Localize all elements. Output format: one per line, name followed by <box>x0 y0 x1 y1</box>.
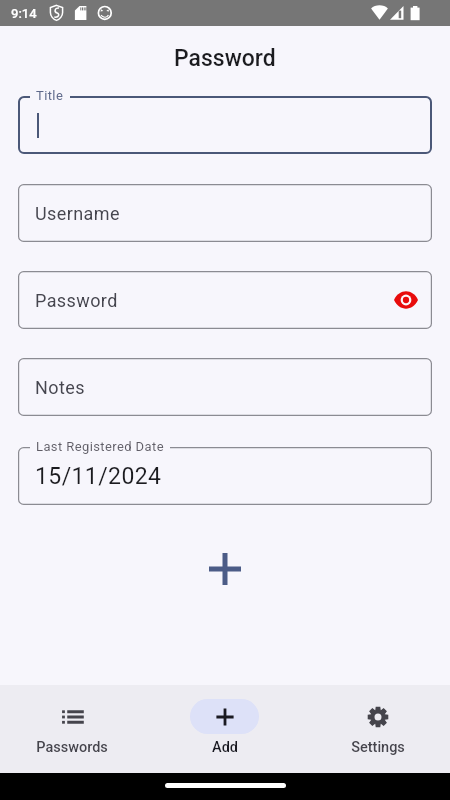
button[interactable]: Settings <box>301 685 450 756</box>
staticText: 15/11/2024 <box>35 463 162 490</box>
staticText: Password <box>35 290 118 311</box>
staticText: Passwords <box>36 739 108 756</box>
staticText: Username <box>35 203 120 224</box>
staticText: Settings <box>351 739 405 756</box>
staticText: Notes <box>35 377 85 398</box>
button[interactable]: Password <box>18 271 432 329</box>
button[interactable]: Last Registered Date <box>18 447 432 505</box>
button[interactable]: Show password <box>387 281 425 319</box>
staticText: 9:14 <box>11 6 37 21</box>
button[interactable]: Username <box>18 184 432 242</box>
staticText: Last Registered Date <box>36 439 164 454</box>
button[interactable]: Passwords <box>0 685 148 756</box>
staticText: Password <box>174 45 276 72</box>
button[interactable]: Title <box>18 96 432 154</box>
button[interactable]: Add field <box>201 545 249 593</box>
button[interactable]: Notes <box>18 358 432 416</box>
button[interactable]: Add <box>148 685 301 756</box>
staticText: Title <box>36 88 64 103</box>
staticText: Add <box>212 739 238 756</box>
